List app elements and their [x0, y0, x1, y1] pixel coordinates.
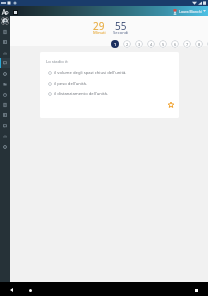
button[interactable]: Menu item 7 [0, 90, 10, 100]
staticText: il volume degli spazi chiusi dell'unità. [54, 70, 127, 76]
button[interactable]: Menu item 10 [0, 121, 10, 131]
button[interactable]: 3 [135, 40, 143, 48]
button[interactable]: Mark question [168, 102, 174, 108]
staticText: 4 [150, 42, 153, 47]
button[interactable]: 8 [195, 40, 203, 48]
staticText: 8 [198, 42, 201, 47]
staticText: il peso dell'unità. [54, 81, 87, 87]
staticText: 3 [138, 42, 141, 47]
button[interactable]: Home [24, 284, 36, 296]
button[interactable]: Profile [1, 17, 9, 25]
button[interactable]: 1 [111, 40, 119, 48]
staticText: 7 [186, 42, 189, 47]
button[interactable]: Menu item 2 [0, 37, 10, 47]
button[interactable]: Menu item 3 [0, 48, 10, 58]
button[interactable]: il volume degli spazi chiusi dell'unità. [48, 69, 127, 76]
button[interactable]: 5 [159, 40, 167, 48]
button[interactable]: il peso dell'unità. [48, 80, 87, 87]
staticText: 29 [93, 19, 105, 33]
button[interactable]: Menu item 5 [0, 69, 10, 79]
button[interactable]: Switch app [9, 7, 22, 17]
button[interactable]: Back [5, 284, 17, 296]
staticText: 55 [115, 19, 127, 33]
staticText: Laura Bianchi [179, 9, 202, 14]
button[interactable]: Menu item 9 [0, 110, 10, 120]
button[interactable]: Menu item 1 [0, 27, 10, 37]
staticText: il distanziamento dell'unità. [54, 91, 108, 97]
button[interactable]: 7 [183, 40, 191, 48]
staticText: 2 [126, 42, 129, 47]
staticText: Minuti [93, 30, 106, 36]
button[interactable]: Menu item 4 [0, 58, 10, 68]
staticText: Secondi [113, 30, 129, 36]
staticText: Lo stadio è: [46, 59, 69, 65]
button[interactable]: 6 [171, 40, 179, 48]
button[interactable]: Menu item 12 [0, 142, 10, 152]
staticText: 5 [162, 42, 165, 47]
button[interactable]: Menu item 11 [0, 131, 10, 141]
button[interactable]: Recents [190, 284, 202, 296]
button[interactable]: 4 [147, 40, 155, 48]
button[interactable]: Account menu [173, 6, 206, 16]
button[interactable]: Menu item 8 [0, 100, 10, 110]
button[interactable]: App logo [0, 7, 11, 17]
button[interactable]: Menu item 6 [0, 79, 10, 89]
button[interactable]: 9 [207, 40, 208, 48]
button[interactable]: 2 [123, 40, 131, 48]
staticText: 6 [174, 42, 177, 47]
button[interactable]: il distanziamento dell'unità. [48, 90, 108, 97]
staticText: 1 [114, 42, 117, 47]
